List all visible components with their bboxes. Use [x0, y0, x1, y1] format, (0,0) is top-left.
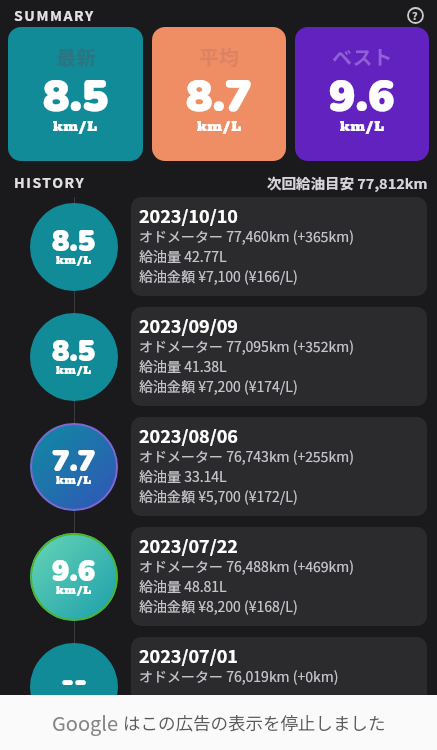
button[interactable]: Help [403, 3, 427, 27]
staticText: 平均 [199, 42, 239, 71]
staticText: km/L [53, 117, 98, 136]
staticText: -- [61, 662, 88, 702]
staticText: 8.5 [52, 332, 96, 372]
staticText: km/L [56, 473, 92, 488]
staticText: はこの広告の表示を停止しました [119, 710, 386, 735]
staticText: オドメーター 77,460km (+365km) [139, 226, 354, 246]
staticText: 2023/07/22 [139, 532, 238, 558]
staticText: km/L [56, 363, 92, 378]
staticText: km/L [197, 117, 242, 136]
staticText: 7.7 [52, 442, 96, 482]
staticText: 給油金額 ¥5,700 (¥172/L) [139, 486, 298, 506]
staticText: オドメーター 76,743km (+255km) [139, 446, 354, 466]
staticText: SUMMARY [14, 5, 95, 25]
staticText: 9.6 [329, 67, 395, 127]
staticText: 給油量 42.77L [139, 246, 227, 266]
staticText: km/L [56, 253, 92, 268]
staticText: 2023/08/06 [139, 422, 238, 448]
staticText: オドメーター 76,488km (+469km) [139, 556, 354, 576]
staticText: 8.5 [43, 67, 109, 127]
staticText: オドメーター 76,019km (+0km) [139, 666, 339, 686]
staticText: ベスト [332, 42, 393, 71]
button[interactable]: 2023/10/10 [131, 197, 427, 296]
button[interactable]: 2023/07/01 [131, 637, 427, 736]
staticText: km/L [340, 117, 385, 136]
staticText: 給油金額 ¥8,200 (¥168/L) [139, 596, 298, 616]
button[interactable]: 8.5 [30, 203, 118, 291]
staticText: 8.5 [52, 222, 96, 262]
staticText: 2023/07/01 [139, 642, 238, 668]
button[interactable]: 8.5 [30, 313, 118, 401]
button[interactable]: -- [30, 643, 118, 731]
button[interactable]: 2023/09/09 [131, 307, 427, 406]
staticText: ? [412, 7, 418, 23]
staticText: 給油金額 ¥7,200 (¥174/L) [139, 376, 298, 396]
button[interactable]: 最新 [8, 27, 143, 161]
staticText: km/L [56, 693, 92, 708]
staticText: オドメーター 77,095km (+352km) [139, 336, 354, 356]
staticText: Google [52, 708, 119, 737]
staticText: km/L [56, 583, 92, 598]
button[interactable]: 9.6 [30, 533, 118, 621]
button[interactable]: 平均 [152, 27, 286, 161]
staticText: 9.6 [52, 552, 96, 592]
staticText: 給油量 33.14L [139, 466, 227, 486]
staticText: 2023/09/09 [139, 312, 238, 338]
button[interactable]: 7.7 [30, 423, 118, 511]
staticText: 給油金額 ¥7,100 (¥166/L) [139, 266, 298, 286]
staticText: 8.7 [186, 67, 252, 127]
staticText: HISTORY [14, 172, 86, 192]
staticText: 最新 [56, 42, 96, 71]
staticText: 給油量 41.38L [139, 356, 227, 376]
staticText: 給油量 48.81L [139, 576, 227, 596]
staticText: 2023/10/10 [139, 202, 238, 228]
button[interactable]: 2023/08/06 [131, 417, 427, 516]
button[interactable]: ベスト [295, 27, 429, 161]
button[interactable]: 2023/07/22 [131, 527, 427, 626]
staticText: 次回給油目安 77,812km [267, 172, 428, 193]
